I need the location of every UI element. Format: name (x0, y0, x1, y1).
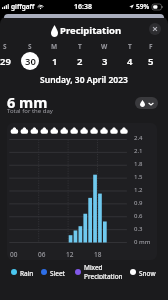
staticText: 1.2 (134, 186, 143, 194)
button[interactable]: Snow (130, 264, 147, 280)
button[interactable]: S (17, 42, 42, 72)
staticText: S (28, 42, 32, 51)
button[interactable]: T (67, 42, 92, 72)
button[interactable]: Rain (11, 264, 25, 280)
button[interactable]: F (142, 42, 160, 72)
staticText: Snow (139, 269, 156, 278)
button[interactable]: Sleet (41, 264, 56, 280)
staticText: 00 (10, 250, 18, 259)
staticText: S (3, 42, 7, 51)
staticText: 29 (0, 55, 11, 68)
staticText: 4 (127, 55, 133, 68)
staticText: F (149, 42, 153, 51)
staticText: 1.8 (134, 160, 143, 168)
staticText: 5 (148, 55, 154, 68)
staticText: 6 mm (7, 92, 48, 112)
staticText: 1.5 (134, 173, 143, 181)
staticText: 2.1 (134, 147, 143, 155)
staticText: 2 (77, 55, 83, 68)
staticText: T (128, 42, 132, 51)
button[interactable]: Mixed Precipitation (75, 264, 114, 280)
staticText: 2.4 (134, 134, 143, 142)
staticText: 12 (66, 250, 74, 259)
staticText: 3 (102, 55, 108, 68)
staticText: 16:38 (74, 2, 92, 12)
staticText: 1 (52, 55, 58, 68)
staticText: 0.6 (134, 212, 143, 220)
staticText: W (101, 42, 108, 51)
staticText: Total for the day (7, 107, 53, 115)
staticText: T (78, 42, 82, 51)
staticText: Sunday, 30 April 2023 (0, 74, 168, 86)
staticText: Rain (20, 269, 34, 278)
staticText: Precipitation (60, 24, 122, 37)
staticText: 30 (25, 55, 36, 68)
staticText: M (51, 42, 58, 51)
button[interactable]: Precipitation type (135, 97, 158, 109)
staticText: Sleet (50, 269, 65, 278)
button[interactable]: T (117, 42, 142, 72)
staticText: Mixed Precipitation (84, 263, 123, 279)
staticText: 0.9 (134, 199, 143, 207)
button[interactable]: Close (149, 23, 161, 35)
staticText: 06 (38, 250, 46, 259)
staticText: 18 (94, 250, 102, 259)
button[interactable]: W (92, 42, 117, 72)
staticText: giffgaff (11, 2, 35, 11)
button[interactable]: M (42, 42, 67, 72)
button[interactable]: S (0, 42, 17, 72)
staticText: 0 mm (134, 238, 151, 246)
staticText: 59% (136, 2, 150, 11)
staticText: 0.3 (134, 225, 143, 233)
